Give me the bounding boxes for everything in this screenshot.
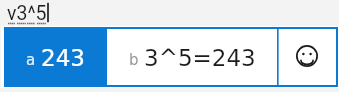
button[interactable]: Emoji [278, 27, 337, 87]
staticText: 3^5=243 [144, 45, 256, 72]
button[interactable]: b [107, 27, 277, 87]
staticText: b [129, 51, 139, 68]
staticText: a [26, 51, 36, 68]
button[interactable]: a [4, 27, 107, 87]
staticText: 243 [41, 45, 85, 72]
staticText: v3^5 [7, 2, 47, 25]
